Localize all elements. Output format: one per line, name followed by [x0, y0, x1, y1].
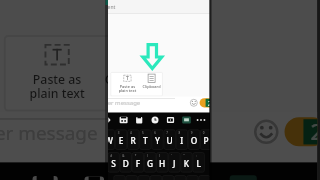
button[interactable]: Paste options [108, 0, 210, 180]
